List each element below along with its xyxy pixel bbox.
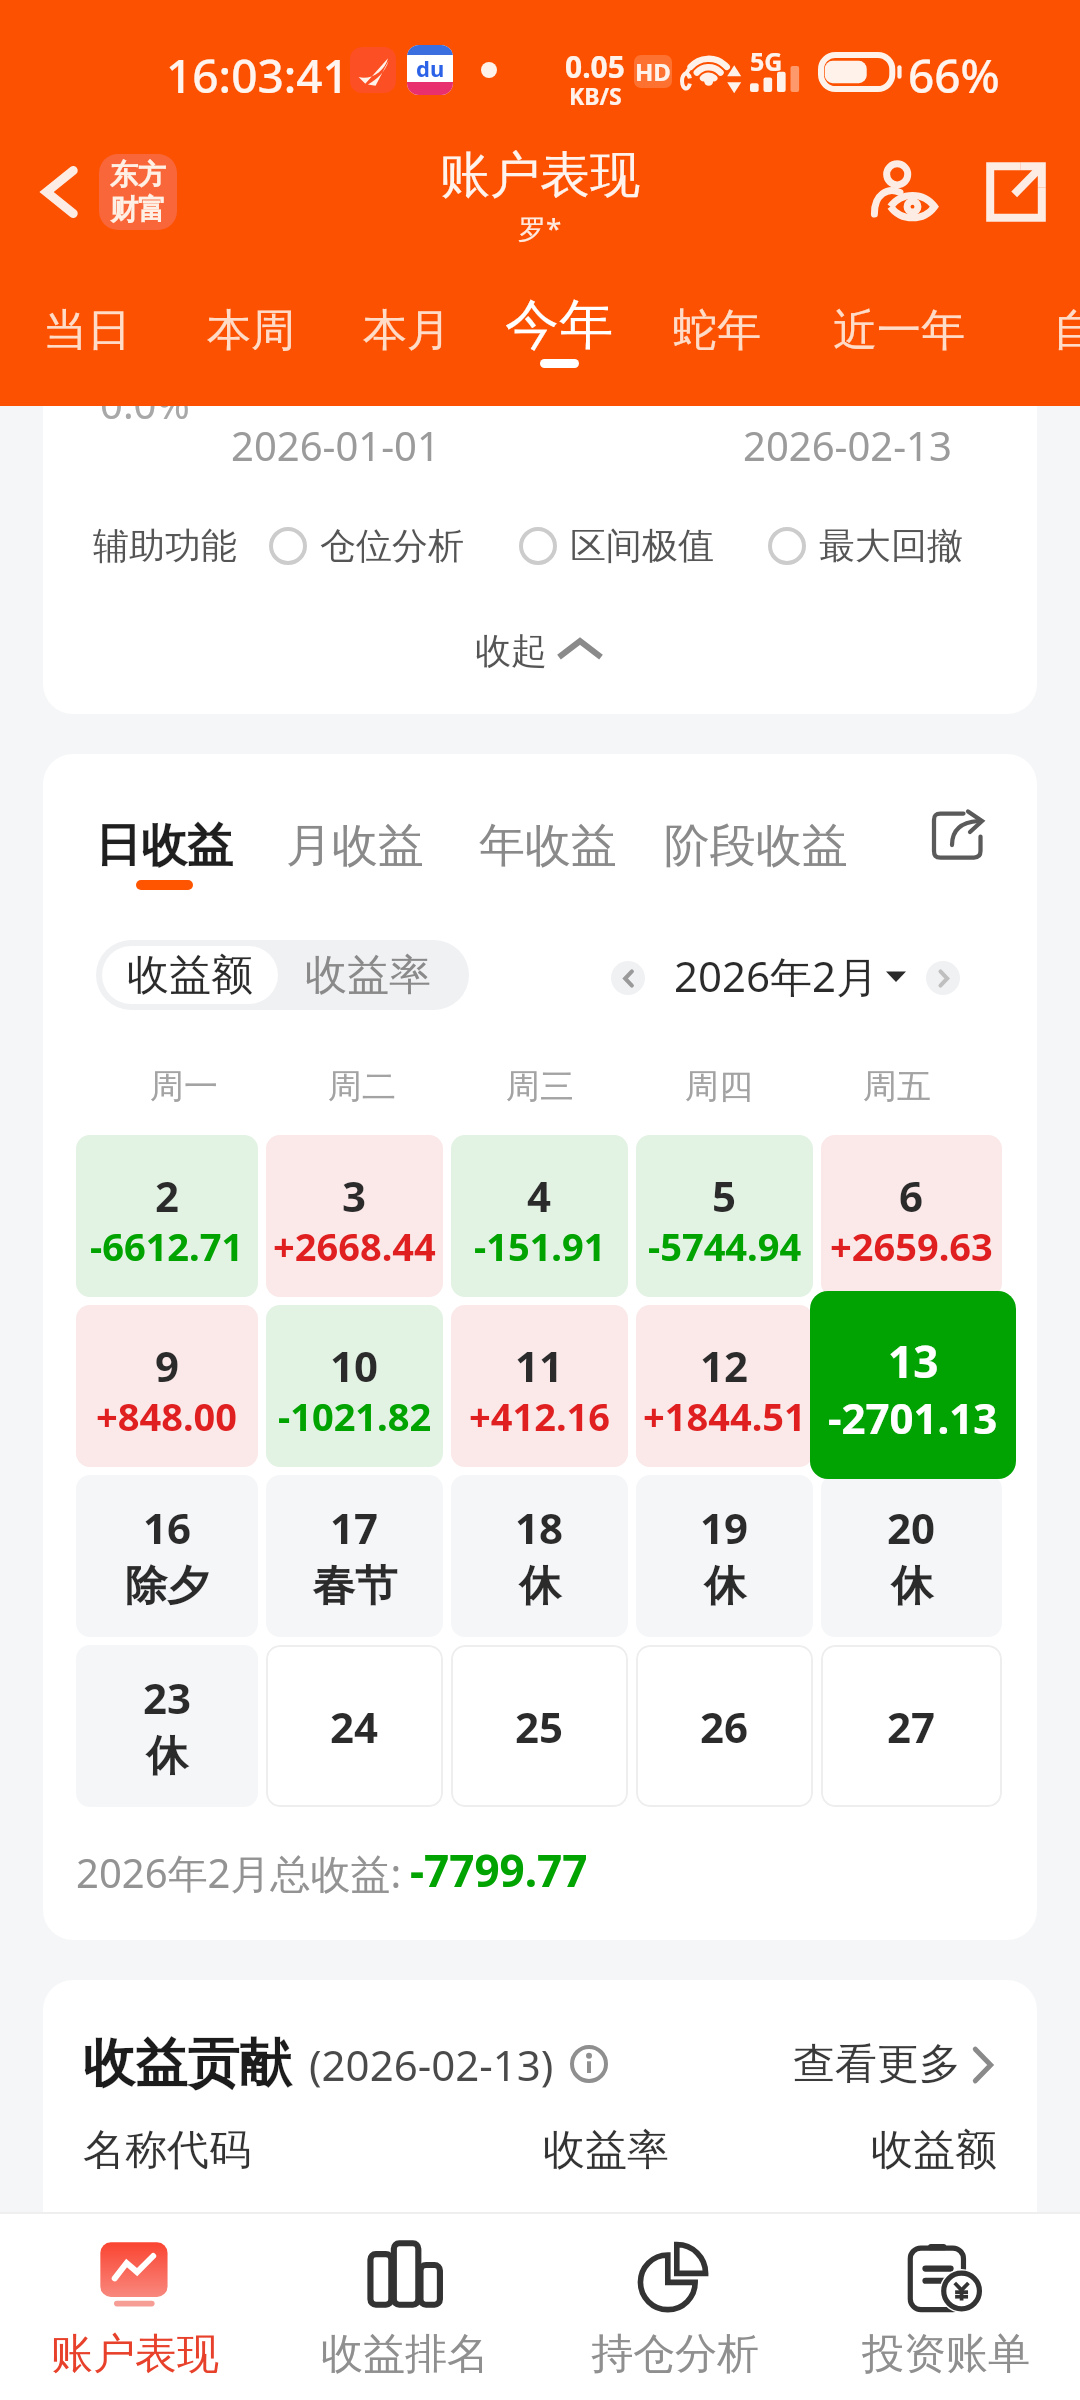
staticText: 25	[515, 1698, 564, 1755]
staticText: 账户表现	[440, 144, 640, 207]
staticText: 本周	[207, 303, 295, 358]
button[interactable]: 今年	[505, 288, 613, 368]
button[interactable]: 持仓分析	[540, 2214, 810, 2400]
button[interactable]: 投资账单	[811, 2214, 1080, 2400]
button[interactable]: 4	[451, 1135, 628, 1297]
staticText: 当日	[43, 303, 131, 358]
staticText: 18	[515, 1499, 564, 1556]
staticText: HD	[635, 55, 671, 88]
button[interactable]: 区间极值	[518, 523, 714, 568]
button[interactable]: 收益额	[102, 946, 278, 1004]
button[interactable]: 最大回撤	[767, 523, 963, 568]
button[interactable]: 12	[636, 1305, 813, 1467]
staticText: 休	[519, 1560, 561, 1613]
button[interactable]: 年收益	[479, 817, 617, 875]
staticText: 区间极值	[570, 523, 714, 568]
staticText: 0.0%	[100, 406, 190, 430]
staticText: KB/S	[569, 80, 622, 111]
staticText: 11	[515, 1337, 564, 1394]
staticText: 周一	[150, 1065, 218, 1108]
staticText: 蛇年	[673, 303, 761, 358]
button[interactable]: Back	[28, 163, 86, 221]
button[interactable]: 13	[810, 1291, 1016, 1479]
button[interactable]: Next month	[926, 961, 960, 995]
staticText: 投资账单	[862, 2328, 1030, 2381]
button[interactable]: 27	[821, 1645, 1002, 1807]
button[interactable]: 收益排名	[270, 2214, 540, 2400]
staticText: 收益率	[543, 2124, 669, 2177]
button[interactable]: 2	[76, 1135, 258, 1297]
staticText: 年收益	[479, 817, 617, 875]
button[interactable]: East Money	[99, 154, 177, 230]
staticText: 休	[891, 1560, 933, 1613]
staticText: 12	[700, 1337, 749, 1394]
staticText: 10	[330, 1337, 379, 1394]
staticText: 2026-01-01	[231, 418, 440, 472]
staticText: 19	[700, 1499, 749, 1556]
button[interactable]: 蛇年	[673, 288, 761, 358]
button[interactable]: 当日	[43, 288, 131, 358]
button[interactable]: 6	[821, 1135, 1002, 1297]
button[interactable]: 9	[76, 1305, 258, 1467]
button[interactable]: 19	[636, 1475, 813, 1637]
button[interactable]: 5	[636, 1135, 813, 1297]
staticText: 辅助功能	[93, 523, 237, 568]
button[interactable]: 阶段收益	[664, 817, 848, 875]
button[interactable]: 20	[821, 1475, 1002, 1637]
staticText: 收益额	[871, 2124, 997, 2177]
staticText: 0.05	[565, 46, 625, 87]
button[interactable]: 本月	[363, 288, 451, 358]
staticText: 收益额	[127, 949, 253, 1002]
staticText: 休	[704, 1560, 746, 1613]
staticText: 收益贡献	[83, 2031, 291, 2097]
button[interactable]: 13	[821, 1305, 1002, 1467]
button[interactable]: 收起	[475, 628, 601, 673]
button[interactable]: Share	[986, 162, 1046, 222]
staticText: (2026-02-13)	[309, 2036, 554, 2093]
button[interactable]: 账户表现	[0, 2214, 270, 2400]
button[interactable]: 25	[451, 1645, 628, 1807]
staticText: -6612.71	[90, 1220, 244, 1272]
staticText: 17	[330, 1499, 379, 1556]
staticText: 20	[887, 1499, 936, 1556]
button[interactable]: 本周	[207, 288, 295, 358]
button[interactable]: 18	[451, 1475, 628, 1637]
button[interactable]: 16	[76, 1475, 258, 1637]
staticText: 东方	[110, 157, 166, 192]
staticText: 16:03:41	[166, 44, 349, 107]
staticText: 周二	[328, 1065, 396, 1108]
button[interactable]: 收益率	[273, 946, 463, 1004]
button[interactable]: 月收益	[286, 817, 424, 875]
button[interactable]: 23	[76, 1645, 258, 1807]
button[interactable]: 10	[266, 1305, 443, 1467]
staticText: 除夕	[125, 1560, 209, 1613]
staticText: 13	[887, 1337, 936, 1394]
staticText: 13	[888, 1331, 939, 1391]
button[interactable]: 查看更多	[793, 2038, 995, 2091]
staticText: +2659.63	[830, 1220, 993, 1272]
button[interactable]: Previous month	[611, 961, 645, 995]
staticText: 本月	[363, 303, 451, 358]
button[interactable]: 3	[266, 1135, 443, 1297]
button[interactable]: Account	[870, 157, 938, 225]
staticText: +848.00	[96, 1390, 238, 1442]
staticText: 27	[887, 1698, 936, 1755]
button[interactable]: Share	[932, 810, 982, 860]
button[interactable]: 日收益	[95, 817, 233, 890]
staticText: 今年	[505, 291, 613, 359]
staticText: +412.16	[469, 1390, 611, 1442]
button[interactable]: 自	[1053, 288, 1080, 358]
staticText: 查看更多	[793, 2038, 961, 2091]
staticText: 26	[700, 1698, 749, 1755]
button[interactable]: 近一年	[833, 288, 965, 358]
button[interactable]: 26	[636, 1645, 813, 1807]
button[interactable]: 仓位分析	[268, 523, 464, 568]
button[interactable]: 2026年2月	[674, 947, 906, 1004]
button[interactable]: 11	[451, 1305, 628, 1467]
staticText: 2	[155, 1167, 180, 1224]
staticText: du	[416, 53, 445, 83]
staticText: -151.91	[474, 1220, 606, 1272]
staticText: 3	[342, 1167, 367, 1224]
button[interactable]: 17	[266, 1475, 443, 1637]
button[interactable]: 24	[266, 1645, 443, 1807]
